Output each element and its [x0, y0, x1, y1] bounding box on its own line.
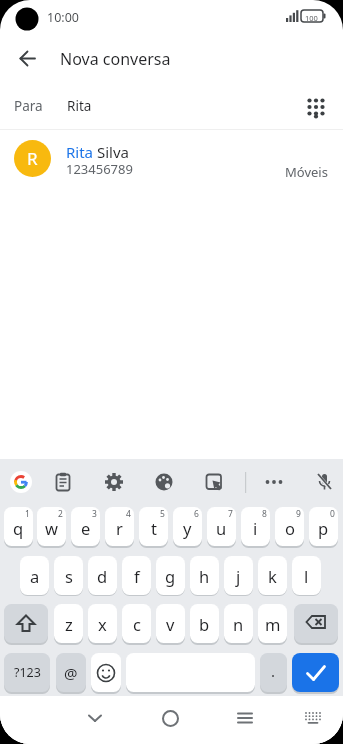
staticText: 7 [228, 508, 233, 520]
button[interactable] [294, 604, 338, 643]
button[interactable] [313, 471, 335, 493]
button[interactable] [230, 703, 260, 733]
button[interactable] [103, 471, 125, 493]
button[interactable]: l [292, 556, 321, 595]
button[interactable] [298, 703, 328, 733]
button[interactable] [203, 471, 225, 493]
button[interactable]: b [190, 604, 219, 643]
staticText: t [151, 517, 157, 539]
staticText: 100 [305, 13, 318, 23]
button[interactable]: s [54, 556, 83, 595]
button[interactable] [52, 471, 74, 493]
staticText: ?123 [14, 664, 41, 681]
staticText: l [304, 565, 309, 587]
button[interactable]: r [105, 507, 134, 546]
button[interactable]: t [139, 507, 168, 546]
button[interactable]: c [122, 604, 151, 643]
button[interactable]: y [173, 507, 202, 546]
button[interactable]: ?123 [4, 653, 50, 692]
staticText: p [318, 517, 329, 539]
button[interactable]: i [241, 507, 270, 546]
staticText: w [45, 517, 58, 539]
staticText: j [236, 565, 241, 587]
button[interactable]: u [207, 507, 236, 546]
button[interactable]: @ [56, 653, 86, 692]
button[interactable]: q [4, 507, 33, 546]
button[interactable]: z [54, 604, 83, 643]
button[interactable] [153, 471, 175, 493]
staticText: @ [64, 663, 78, 683]
button[interactable]: a [20, 556, 49, 595]
staticText: b [199, 613, 210, 635]
staticText: 9 [296, 508, 301, 520]
staticText: 123456789 [66, 160, 133, 178]
staticText: m [265, 613, 281, 635]
staticText: z [65, 613, 73, 635]
staticText: y [183, 517, 192, 539]
staticText: 8 [262, 508, 267, 520]
button[interactable]: f [122, 556, 151, 595]
staticText: o [285, 517, 295, 539]
staticText: g [165, 565, 176, 587]
staticText: Rita Silva [66, 142, 129, 162]
staticText: s [65, 565, 73, 587]
button[interactable]: k [258, 556, 287, 595]
staticText: 6 [194, 508, 199, 520]
staticText: r [116, 517, 123, 539]
button[interactable]: h [190, 556, 219, 595]
staticText: d [97, 565, 108, 587]
staticText: 2 [58, 508, 63, 520]
staticText: e [81, 517, 91, 539]
staticText: Móveis [285, 163, 328, 181]
staticText: i [253, 517, 258, 539]
button[interactable]: g [156, 556, 185, 595]
button[interactable]: p [309, 507, 338, 546]
button[interactable]: m [258, 604, 287, 643]
staticText: 0 [330, 508, 335, 520]
button[interactable] [80, 703, 110, 733]
button[interactable] [10, 471, 32, 493]
staticText: x [98, 613, 107, 635]
button[interactable]: R [0, 130, 343, 186]
button[interactable]: o [275, 507, 304, 546]
button[interactable] [299, 90, 333, 124]
staticText: 3 [92, 508, 97, 520]
button[interactable]: d [88, 556, 117, 595]
button[interactable]: e [71, 507, 100, 546]
button[interactable] [292, 653, 339, 692]
button[interactable] [126, 653, 255, 692]
staticText: k [268, 565, 277, 587]
staticText: c [133, 613, 141, 635]
button[interactable] [155, 703, 185, 733]
staticText: n [233, 613, 244, 635]
staticText: 4 [126, 508, 131, 520]
staticText: a [30, 565, 40, 587]
button[interactable]: v [156, 604, 185, 643]
button[interactable]: w [37, 507, 66, 546]
staticText: 10:00 [47, 9, 79, 26]
staticText: . [271, 661, 276, 681]
staticText: Rita [67, 97, 92, 115]
staticText: h [199, 565, 210, 587]
button[interactable] [12, 43, 42, 73]
button[interactable]: x [88, 604, 117, 643]
staticText: R [27, 147, 38, 170]
button[interactable] [263, 471, 285, 493]
staticText: v [166, 613, 175, 635]
staticText: q [13, 517, 24, 539]
button[interactable]: . [260, 653, 287, 692]
button[interactable] [4, 604, 48, 643]
staticText: 5 [160, 508, 165, 520]
staticText: Nova conversa [60, 48, 171, 70]
button[interactable] [91, 653, 121, 692]
staticText: 1 [25, 508, 30, 520]
staticText: Para [14, 97, 43, 115]
button[interactable]: j [224, 556, 253, 595]
button[interactable]: n [224, 604, 253, 643]
staticText: f [134, 565, 140, 587]
staticText: u [216, 517, 227, 539]
